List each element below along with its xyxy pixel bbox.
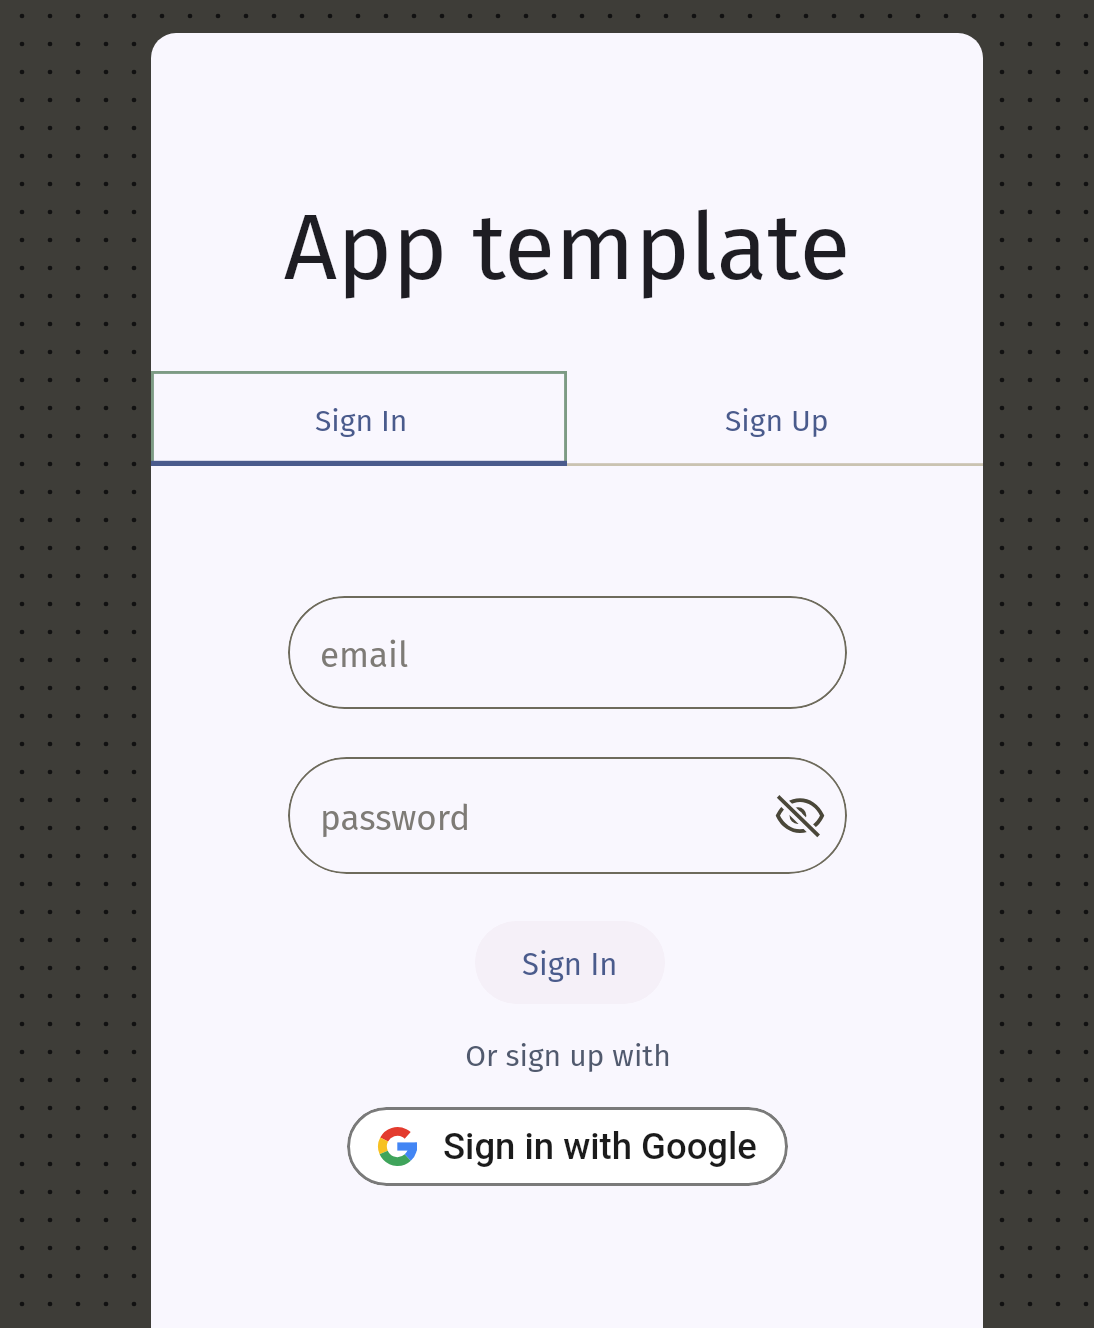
button[interactable]: Sign in with Google (347, 1107, 788, 1186)
staticText: Sign Up (725, 403, 829, 439)
button[interactable]: Sign In (151, 371, 567, 466)
staticText: App template (151, 192, 983, 304)
staticText: Sign In (315, 403, 408, 439)
button[interactable]: password (288, 757, 847, 874)
button[interactable]: email (288, 596, 847, 709)
button[interactable]: Sign In (475, 921, 665, 1004)
staticText: password (320, 797, 471, 839)
staticText: Sign in with Google (443, 1125, 757, 1168)
button[interactable]: Show password (777, 793, 823, 839)
staticText: Sign In (522, 946, 618, 983)
staticText: Or sign up with (152, 1038, 983, 1074)
button[interactable]: Sign Up (567, 371, 983, 466)
staticText: email (320, 634, 409, 676)
